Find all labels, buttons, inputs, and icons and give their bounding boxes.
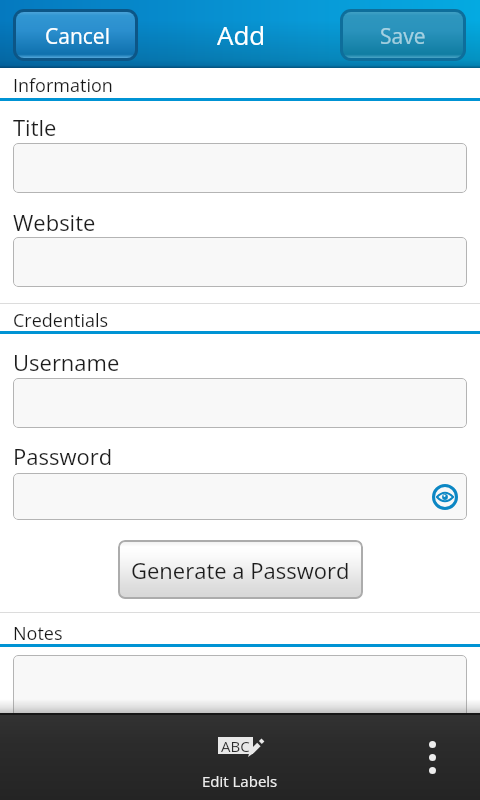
button[interactable]: Show password	[13, 473, 467, 520]
button[interactable]: ABC	[170, 726, 310, 788]
staticText: Cancel	[45, 22, 110, 51]
staticText: Title	[13, 112, 57, 142]
staticText: Username	[13, 347, 120, 377]
staticText: Edit Labels	[202, 771, 278, 791]
staticText: Password	[13, 441, 113, 471]
staticText: ABC	[221, 736, 250, 753]
button[interactable]: Save	[340, 9, 466, 61]
button[interactable]: Generate a Password	[118, 540, 363, 599]
staticText: Add	[217, 17, 266, 52]
button[interactable]	[13, 143, 467, 193]
staticText: Save	[380, 22, 426, 51]
button[interactable]: More options	[412, 727, 452, 787]
button[interactable]: Cancel	[13, 9, 138, 61]
button[interactable]	[13, 655, 467, 725]
staticText: Notes	[13, 621, 63, 646]
staticText: Generate a Password	[131, 555, 350, 585]
staticText: Website	[13, 207, 96, 237]
button[interactable]	[13, 378, 467, 428]
staticText: Information	[13, 73, 113, 98]
staticText: Credentials	[13, 308, 109, 333]
button[interactable]: Show password	[429, 481, 461, 513]
button[interactable]	[13, 237, 467, 287]
